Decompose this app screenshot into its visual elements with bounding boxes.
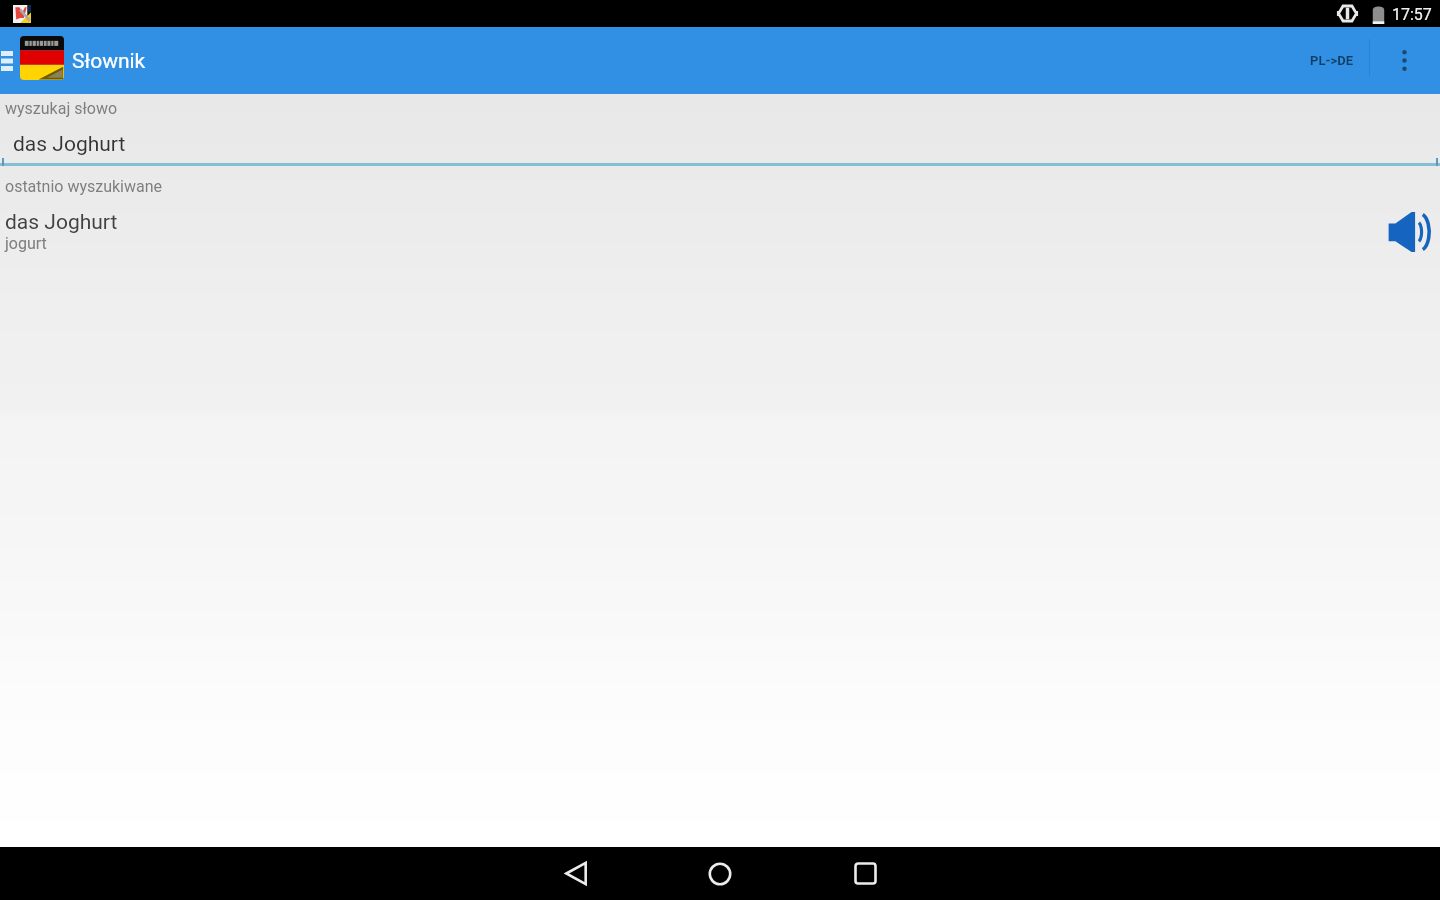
staticText: 17:57 bbox=[1392, 5, 1432, 24]
staticText: Słownik bbox=[72, 49, 146, 74]
button[interactable]: das Joghurt bbox=[0, 204, 1440, 259]
button[interactable]: Recent apps bbox=[825, 847, 905, 900]
staticText: das Joghurt bbox=[5, 210, 118, 235]
button[interactable]: Play pronunciation bbox=[1378, 204, 1440, 259]
button[interactable]: Home bbox=[680, 847, 760, 900]
staticText: das Joghurt bbox=[13, 132, 126, 157]
button[interactable]: More options bbox=[1384, 27, 1424, 94]
button[interactable]: Back bbox=[536, 847, 616, 900]
staticText: wyszukaj słowo bbox=[5, 99, 118, 118]
button[interactable]: das Joghurt bbox=[0, 122, 1440, 166]
staticText: PL->DE bbox=[1310, 53, 1353, 68]
staticText: jogurt bbox=[5, 234, 47, 253]
button[interactable]: PL->DE bbox=[1296, 27, 1366, 94]
button[interactable]: Change language bbox=[20, 36, 64, 80]
button[interactable]: Open navigation drawer bbox=[0, 27, 14, 94]
staticText: ostatnio wyszukiwane bbox=[5, 177, 163, 196]
